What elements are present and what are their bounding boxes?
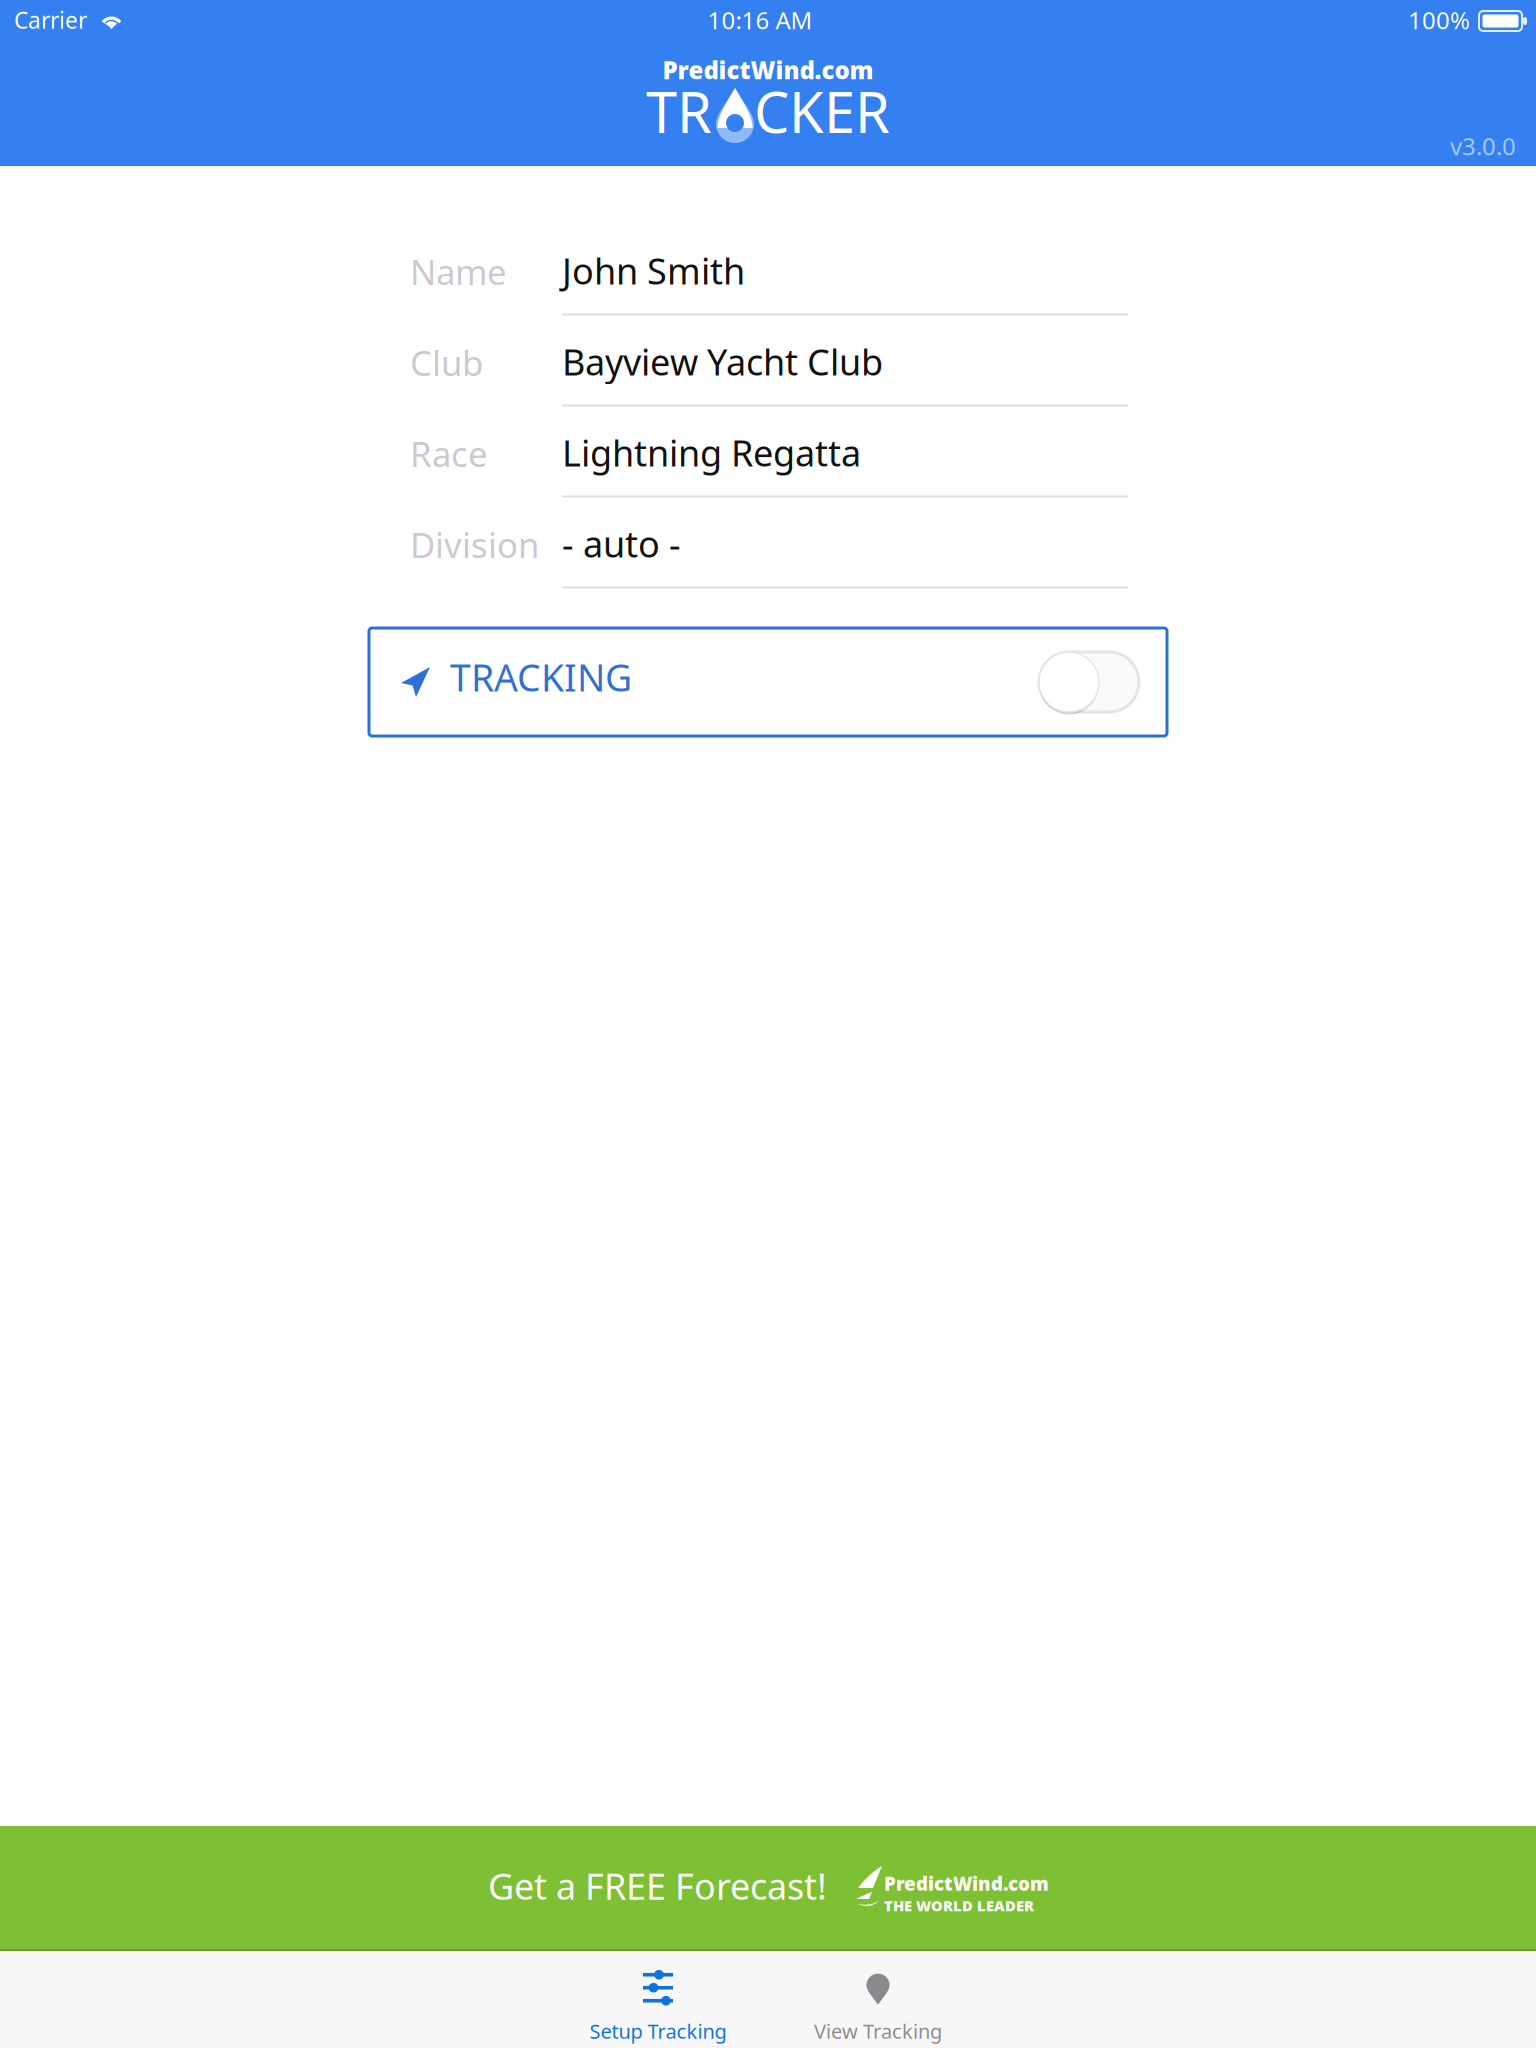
- staticText: PredictWind.com: [662, 54, 873, 86]
- staticText: - auto -: [562, 520, 681, 567]
- staticText: View Tracking: [814, 2018, 942, 2044]
- button[interactable]: View Tracking: [768, 1967, 988, 2048]
- button[interactable]: TRACKING: [369, 628, 1167, 736]
- staticText: 10:16 AM: [707, 4, 812, 36]
- staticText: Name: [410, 248, 507, 294]
- button[interactable]: Setup Tracking: [548, 1967, 768, 2048]
- button[interactable]: Club: [410, 325, 1128, 416]
- staticText: 100%: [1408, 4, 1470, 36]
- staticText: CKER: [754, 74, 890, 148]
- staticText: PredictWind.com: [884, 1871, 1049, 1896]
- staticText: Bayview Yacht Club: [562, 338, 883, 385]
- button[interactable]: Name: [410, 234, 1128, 325]
- staticText: John Smith: [562, 247, 745, 294]
- staticText: TR: [646, 74, 712, 148]
- staticText: THE WORLD LEADER: [884, 1896, 1034, 1915]
- staticText: Race: [410, 430, 488, 476]
- button[interactable]: Get a FREE Forecast! PredictWind.com — t…: [0, 1826, 1536, 1949]
- button[interactable]: Division: [410, 507, 1128, 598]
- staticText: Setup Tracking: [589, 2018, 726, 2044]
- staticText: Division: [410, 521, 539, 567]
- staticText: Get a FREE Forecast!: [488, 1862, 827, 1910]
- staticText: Club: [410, 339, 483, 385]
- staticText: v3.0.0: [1450, 130, 1516, 162]
- staticText: TRACKING: [450, 652, 632, 702]
- staticText: Lightning Regatta: [562, 429, 861, 476]
- staticText: Carrier: [14, 5, 87, 35]
- button[interactable]: Race: [410, 416, 1128, 507]
